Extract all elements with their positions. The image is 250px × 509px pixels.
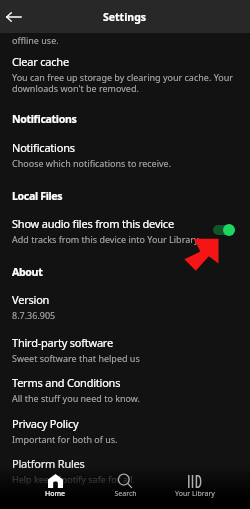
staticText: Help keep Spotify safe for all. (12, 473, 135, 485)
staticText: Notifications (12, 112, 77, 126)
staticText: Terms and Conditions (12, 375, 121, 390)
staticText: All the stuff you need to know. (12, 392, 140, 404)
staticText: Important for both of us. (12, 433, 118, 445)
staticText: Third-party software (12, 335, 113, 350)
button[interactable]: Notifications (0, 140, 250, 169)
button[interactable]: Third-party software (0, 335, 250, 364)
button[interactable]: Home (22, 474, 88, 499)
staticText: 8.7.36.905 (12, 309, 56, 321)
staticText: Settings (103, 10, 147, 24)
staticText: offline use. (12, 34, 59, 46)
staticText: Clear cache (12, 54, 69, 69)
button[interactable]: Platform Rules (0, 456, 250, 485)
button[interactable]: Version (0, 292, 250, 321)
button[interactable]: Your Library (162, 474, 228, 499)
button[interactable]: Clear cache (0, 54, 250, 94)
staticText: Sweet software that helped us (12, 352, 140, 364)
button[interactable]: Terms and Conditions (0, 375, 250, 404)
staticText: About (12, 265, 43, 279)
staticText: Choose which notifications to receive. (12, 157, 172, 169)
staticText: Show audio files from this device (12, 216, 174, 231)
button[interactable]: Privacy Policy (0, 416, 250, 445)
staticText: You can free up storage by clearing your… (12, 71, 233, 94)
staticText: Privacy Policy (12, 416, 79, 431)
staticText: Search (114, 489, 137, 499)
staticText: Notifications (12, 140, 75, 155)
staticText: Add tracks from this device into Your Li… (12, 233, 201, 245)
staticText: Home (45, 489, 65, 499)
staticText: Version (12, 292, 50, 307)
button[interactable]: Show audio files from this device (0, 216, 250, 245)
button[interactable]: Search (92, 474, 158, 499)
staticText: Your Library (175, 489, 215, 499)
button[interactable]: Back (0, 3, 28, 31)
staticText: Local Files (12, 189, 63, 203)
staticText: Platform Rules (12, 456, 85, 471)
